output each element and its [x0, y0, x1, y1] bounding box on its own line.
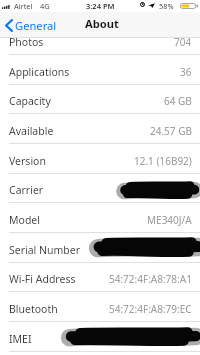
staticText: About [85, 16, 119, 31]
staticText: Bluetooth [9, 302, 58, 316]
staticText: Capacity [9, 94, 51, 108]
other: Back [5, 19, 13, 32]
staticText: Version [9, 154, 46, 168]
button[interactable] [0, 202, 200, 232]
staticText: 24.57 GB [150, 124, 192, 138]
button[interactable] [0, 84, 200, 114]
button[interactable] [0, 143, 200, 173]
staticText: Available [9, 124, 54, 138]
button[interactable] [0, 173, 200, 203]
staticText: Carrier [9, 183, 44, 197]
staticText: 704 [174, 35, 192, 49]
staticText: Wi-Fi Address [9, 272, 76, 286]
staticText: 54:72:4F:A8:78:A1 [109, 272, 192, 286]
button[interactable] [0, 54, 200, 84]
staticText: Photos [9, 35, 44, 49]
button[interactable]: Back [2, 15, 63, 36]
button[interactable] [0, 232, 200, 262]
staticText: General [15, 18, 57, 33]
staticText: Model [9, 213, 40, 227]
button[interactable] [0, 262, 200, 292]
button[interactable] [0, 291, 200, 321]
staticText: Serial Number [9, 243, 81, 257]
staticText: ME340J/A [147, 213, 192, 227]
staticText: 54:72:4F:A8:79:EC [109, 302, 192, 316]
staticText: Applications [9, 65, 70, 79]
staticText: IMEI [9, 332, 32, 346]
button[interactable] [0, 321, 200, 351]
staticText: 58% [159, 1, 174, 11]
staticText: 36 [180, 65, 192, 79]
button[interactable] [0, 113, 200, 143]
staticText: 3:24 PM [86, 1, 115, 11]
button[interactable] [0, 38, 200, 54]
staticText: 4G [40, 1, 50, 11]
staticText: Airtel [14, 1, 33, 11]
staticText: 12.1 (16B92) [134, 154, 192, 168]
staticText: 64 GB [164, 94, 192, 108]
